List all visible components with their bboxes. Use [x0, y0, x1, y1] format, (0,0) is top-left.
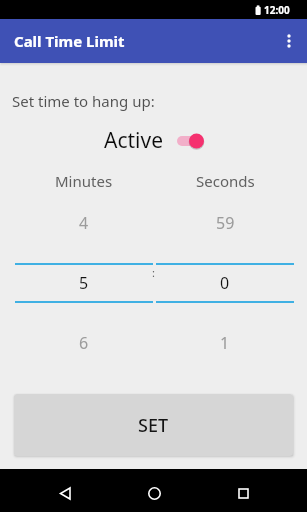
staticText: Minutes: [55, 171, 113, 191]
staticText: 0: [220, 272, 230, 294]
staticText: Set time to hang up:: [12, 91, 155, 111]
button[interactable]: 4: [15, 203, 153, 363]
staticText: Active: [104, 126, 164, 155]
staticText: :: [152, 265, 155, 280]
button[interactable]: [109, 472, 199, 512]
button[interactable]: SET: [14, 394, 293, 456]
button[interactable]: [199, 472, 288, 512]
staticText: 12:00: [264, 3, 290, 17]
staticText: SET: [138, 413, 169, 438]
button[interactable]: Active: [0, 126, 307, 155]
staticText: 1: [220, 332, 230, 354]
staticText: Seconds: [196, 171, 255, 191]
staticText: 4: [79, 212, 89, 234]
button[interactable]: [177, 131, 204, 151]
staticText: 5: [79, 272, 89, 294]
staticText: 6: [79, 332, 89, 354]
staticText: Call Time Limit: [14, 31, 125, 51]
button[interactable]: [271, 23, 307, 59]
button[interactable]: [20, 472, 109, 512]
button[interactable]: 59: [156, 203, 294, 363]
staticText: 59: [216, 212, 235, 234]
